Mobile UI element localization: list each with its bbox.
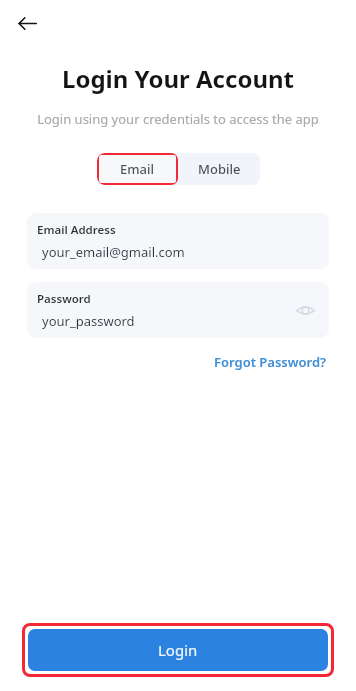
button[interactable]: Email — [97, 153, 178, 185]
button[interactable]: Email Address — [27, 213, 329, 269]
staticText: Email — [120, 160, 155, 178]
staticText: Login using your credentials to access t… — [0, 110, 356, 128]
staticText: your_email@gmail.com — [42, 243, 185, 261]
staticText: Password — [37, 291, 91, 307]
staticText: Email Address — [37, 222, 116, 238]
staticText: Forgot Password? — [214, 353, 327, 371]
button[interactable]: Toggle password visibility — [290, 295, 320, 325]
staticText: your_password — [42, 312, 135, 330]
button[interactable]: Back — [9, 5, 45, 41]
button[interactable]: Password — [27, 282, 329, 338]
button[interactable]: Forgot Password? — [210, 349, 331, 375]
button[interactable]: Mobile — [178, 153, 260, 185]
button[interactable]: Login — [28, 629, 328, 671]
staticText: Login Your Account — [0, 62, 356, 95]
staticText: Mobile — [198, 160, 241, 178]
staticText: Login — [158, 640, 198, 660]
